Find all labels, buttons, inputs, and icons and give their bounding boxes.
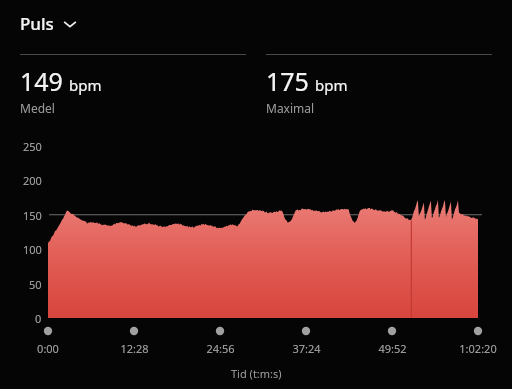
staticText: 1:02:20 — [459, 341, 497, 356]
staticText: Medel — [20, 100, 55, 116]
staticText: 250 — [23, 139, 42, 154]
staticText: 50 — [29, 277, 42, 292]
staticText: 0:00 — [37, 341, 59, 356]
button[interactable]: Puls — [20, 12, 83, 35]
staticText: 12:28 — [120, 341, 149, 356]
other: Expand metric picker — [63, 19, 77, 29]
staticText: 49:52 — [378, 341, 407, 356]
staticText: 150 — [23, 208, 42, 223]
staticText: 24:56 — [206, 341, 235, 356]
staticText: Puls — [20, 12, 54, 35]
button[interactable]: 149 — [20, 54, 246, 116]
button[interactable]: 175 — [266, 54, 492, 116]
staticText: 175 — [266, 64, 309, 98]
staticText: bpm — [69, 75, 102, 95]
staticText: 200 — [23, 173, 42, 188]
staticText: Tid (t:m:s) — [231, 366, 282, 381]
staticText: 149 — [20, 64, 63, 98]
staticText: 37:24 — [292, 341, 321, 356]
staticText: Maximal — [266, 100, 315, 116]
staticText: 100 — [23, 242, 42, 257]
staticText: 0 — [35, 311, 42, 326]
staticText: bpm — [315, 75, 348, 95]
